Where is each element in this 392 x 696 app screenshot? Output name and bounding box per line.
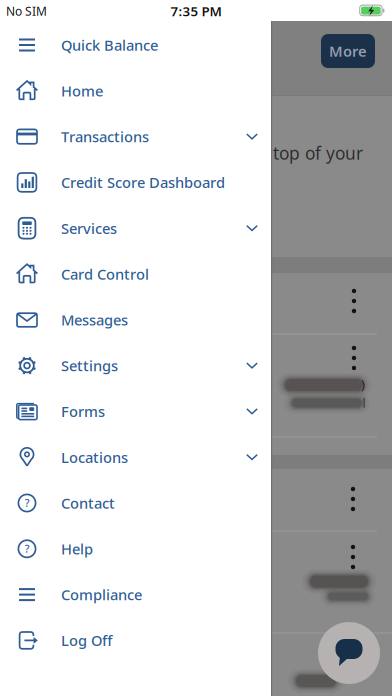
staticText: Messages bbox=[61, 310, 128, 330]
button[interactable]: Card Control bbox=[0, 251, 271, 297]
button[interactable]: Forms bbox=[0, 389, 271, 434]
staticText: l bbox=[362, 395, 365, 411]
staticText: Compliance bbox=[61, 585, 142, 604]
staticText: Home bbox=[61, 81, 103, 101]
button[interactable]: More bbox=[321, 34, 375, 68]
button[interactable]: ? bbox=[0, 526, 271, 571]
button[interactable]: Log Off bbox=[0, 618, 271, 663]
button[interactable]: Transactions bbox=[0, 114, 271, 159]
staticText: top of your bbox=[273, 141, 363, 164]
staticText: ) bbox=[361, 375, 365, 393]
staticText: Contact bbox=[61, 493, 115, 513]
staticText: Services bbox=[61, 218, 117, 238]
staticText: No SIM bbox=[6, 3, 47, 19]
staticText: Forms bbox=[61, 402, 105, 421]
staticText: ? bbox=[25, 496, 30, 510]
staticText: Help bbox=[61, 539, 93, 559]
button[interactable]: Messages bbox=[0, 297, 271, 342]
button[interactable]: ? bbox=[0, 480, 271, 526]
staticText: Quick Balance bbox=[61, 35, 158, 55]
staticText: Log Off bbox=[61, 631, 112, 650]
staticText: Transactions bbox=[61, 127, 149, 146]
button[interactable]: Compliance bbox=[0, 572, 271, 617]
button[interactable]: Quick Balance bbox=[0, 22, 271, 68]
staticText: More bbox=[329, 41, 367, 61]
staticText: ? bbox=[25, 541, 30, 556]
staticText: Settings bbox=[61, 356, 118, 375]
staticText: Locations bbox=[61, 447, 128, 467]
button[interactable]: Credit Score Dashboard bbox=[0, 160, 271, 205]
button[interactable]: Chat bbox=[318, 622, 380, 684]
staticText: 7:35 PM bbox=[170, 2, 221, 20]
staticText: Card Control bbox=[61, 264, 149, 284]
button[interactable]: Locations bbox=[0, 434, 271, 480]
button[interactable]: Home bbox=[0, 68, 271, 113]
button[interactable]: Settings bbox=[0, 343, 271, 388]
button[interactable]: Services bbox=[0, 205, 271, 251]
staticText: Credit Score Dashboard bbox=[61, 173, 225, 192]
